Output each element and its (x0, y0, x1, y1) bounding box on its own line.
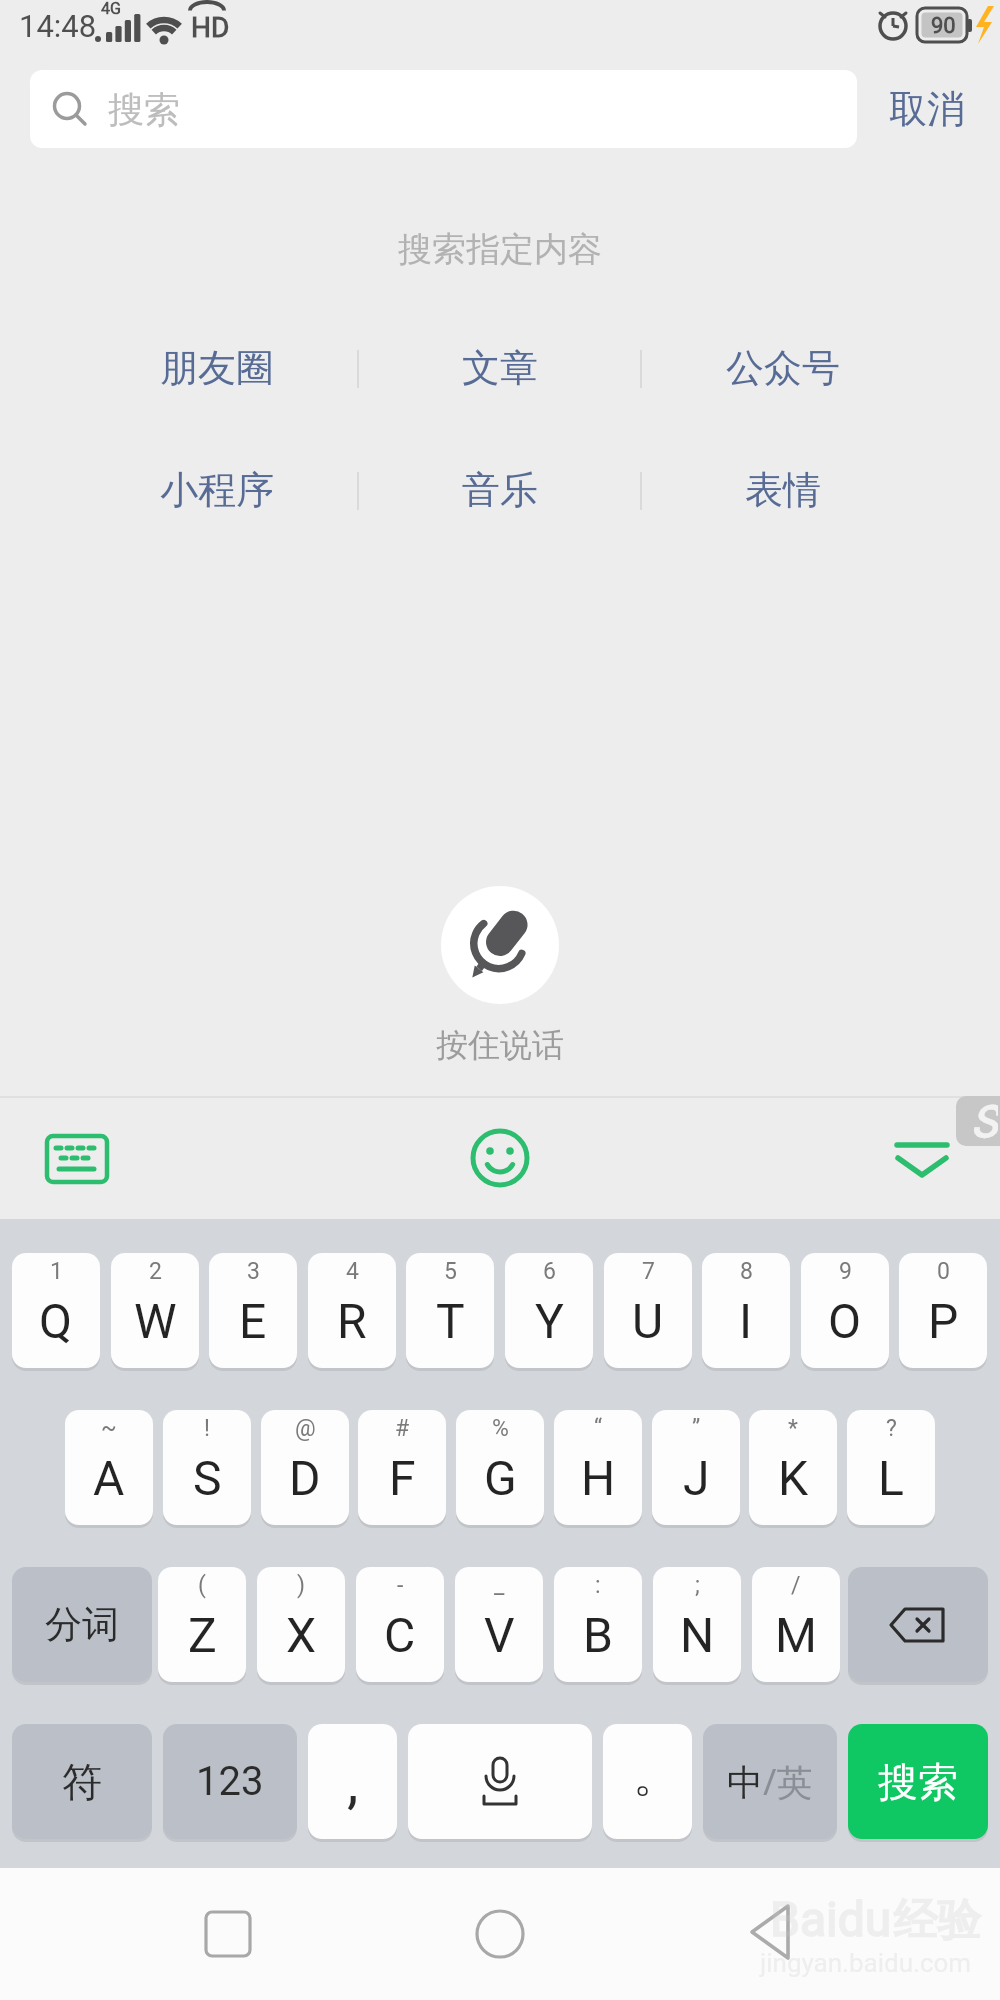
staticText: 90 (931, 13, 956, 39)
staticText: 音乐 (462, 466, 538, 514)
button[interactable]: 9 (801, 1253, 889, 1368)
button[interactable]: “ (554, 1410, 642, 1525)
button[interactable]: 中/英 (703, 1724, 837, 1839)
staticText: 取消 (889, 85, 965, 133)
button[interactable]: 123 (163, 1724, 297, 1839)
button[interactable]: _ (455, 1567, 543, 1682)
button[interactable]: # (358, 1410, 446, 1525)
staticText: W (134, 1293, 177, 1349)
button[interactable] (196, 1902, 260, 1966)
staticText: Baidu (770, 1891, 892, 1947)
staticText: 小程序 (160, 466, 274, 514)
button[interactable]: 7 (604, 1253, 692, 1368)
button[interactable]: * (749, 1410, 837, 1525)
button[interactable]: 8 (702, 1253, 790, 1368)
staticText: 3 (247, 1258, 260, 1285)
button[interactable]: ) (257, 1567, 345, 1682)
button[interactable]: 音乐 (358, 462, 641, 518)
button[interactable]: ” (652, 1410, 740, 1525)
staticText: E (239, 1293, 267, 1349)
staticText: O (828, 1293, 862, 1349)
staticText: 0 (937, 1258, 950, 1285)
button[interactable] (740, 1898, 804, 1970)
button[interactable]: 搜索 (848, 1724, 988, 1839)
staticText: 中/英 (727, 1757, 813, 1806)
button[interactable] (848, 1567, 988, 1682)
staticText: @ (295, 1415, 316, 1442)
staticText: 4 (346, 1258, 359, 1285)
button[interactable]: ? (847, 1410, 935, 1525)
button[interactable]: @ (261, 1410, 349, 1525)
button[interactable]: 分词 (12, 1567, 152, 1682)
button[interactable]: ! (163, 1410, 251, 1525)
staticText: # (395, 1415, 410, 1442)
staticText: 1 (50, 1258, 63, 1285)
button[interactable]: ~ (65, 1410, 153, 1525)
staticText: K (778, 1450, 809, 1506)
button[interactable]: 文章 (358, 340, 641, 396)
staticText: A (93, 1450, 125, 1506)
staticText: 7 (642, 1258, 655, 1285)
button[interactable]: ( (158, 1567, 246, 1682)
button[interactable]: / (752, 1567, 840, 1682)
button[interactable]: 。 (603, 1724, 692, 1839)
button[interactable] (468, 1126, 532, 1190)
staticText: - (397, 1572, 404, 1599)
staticText: 符 (62, 1757, 102, 1807)
staticText: F (389, 1450, 416, 1506)
staticText: ( (198, 1572, 206, 1599)
button[interactable]: 3 (209, 1253, 297, 1368)
button[interactable]: 1 (12, 1253, 100, 1368)
button[interactable]: 朋友圈 (75, 340, 358, 396)
staticText: U (632, 1293, 664, 1349)
button[interactable]: 公众号 (641, 340, 924, 396)
staticText: G (484, 1450, 517, 1506)
staticText: / (791, 1572, 801, 1599)
button[interactable]: % (456, 1410, 544, 1525)
staticText: C (384, 1607, 416, 1663)
staticText: 。 (633, 1747, 679, 1805)
staticText: R (337, 1293, 367, 1349)
staticText: L (878, 1450, 904, 1506)
button[interactable]: 5 (406, 1253, 494, 1368)
button[interactable] (408, 1724, 592, 1839)
staticText: N (680, 1607, 715, 1663)
staticText: 5 (444, 1258, 457, 1285)
staticText: S (193, 1450, 222, 1506)
staticText: 朋友圈 (160, 344, 274, 392)
staticText: I (739, 1293, 753, 1349)
button[interactable]: 搜索 (30, 70, 857, 148)
button[interactable] (441, 886, 559, 1004)
button[interactable]: 符 (12, 1724, 152, 1839)
button[interactable] (468, 1902, 532, 1966)
button[interactable]: 4 (308, 1253, 396, 1368)
button[interactable]: 取消 (872, 70, 982, 148)
staticText: P (928, 1293, 959, 1349)
button[interactable]: - (356, 1567, 444, 1682)
staticText: V (484, 1607, 515, 1663)
staticText: Q (39, 1293, 73, 1349)
staticText: ; (695, 1572, 700, 1599)
button[interactable]: 小程序 (75, 462, 358, 518)
button[interactable]: , (308, 1724, 397, 1839)
staticText: 分词 (45, 1601, 119, 1648)
staticText: 搜索 (108, 87, 180, 132)
staticText: ~ (101, 1415, 117, 1442)
button[interactable]: 0 (899, 1253, 987, 1368)
button[interactable]: 6 (505, 1253, 593, 1368)
staticText: M (775, 1607, 817, 1663)
staticText: 4G (101, 0, 121, 18)
button[interactable] (44, 1128, 112, 1188)
button[interactable] (890, 1134, 954, 1186)
button[interactable]: : (554, 1567, 642, 1682)
button[interactable]: 2 (111, 1253, 199, 1368)
staticText: ” (692, 1415, 701, 1442)
staticText: 表情 (745, 466, 821, 514)
staticText: * (788, 1415, 798, 1442)
staticText: 经验 (893, 1893, 981, 1948)
button[interactable]: ; (653, 1567, 741, 1682)
button[interactable]: 表情 (641, 462, 924, 518)
staticText: 8 (740, 1258, 753, 1285)
staticText: : (595, 1572, 601, 1599)
staticText: 搜索指定内容 (398, 228, 602, 271)
